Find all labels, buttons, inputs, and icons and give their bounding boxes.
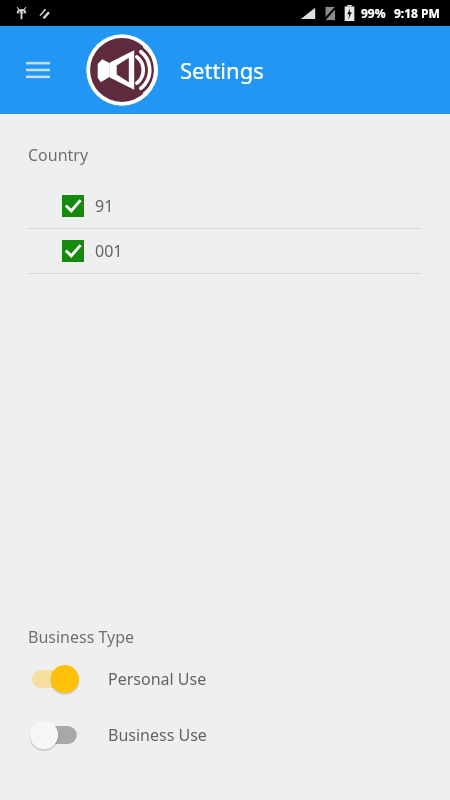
button[interactable]: Open navigation menu	[18, 50, 58, 90]
button[interactable]: App logo	[84, 32, 160, 108]
staticText: Personal Use	[108, 668, 207, 690]
staticText: 001	[95, 240, 123, 262]
staticText: Business Use	[108, 724, 207, 746]
button[interactable]: Personal Use	[0, 662, 450, 696]
staticText: Business Type	[28, 626, 135, 648]
staticText: Country	[28, 144, 89, 166]
button[interactable]: 001	[0, 229, 450, 273]
staticText: 99%	[361, 5, 386, 21]
button[interactable]: 91	[0, 184, 450, 228]
staticText: 9:18 PM	[394, 5, 440, 21]
staticText: 91	[95, 195, 114, 217]
button[interactable]: Business Use	[0, 718, 450, 752]
staticText: Settings	[180, 55, 264, 85]
